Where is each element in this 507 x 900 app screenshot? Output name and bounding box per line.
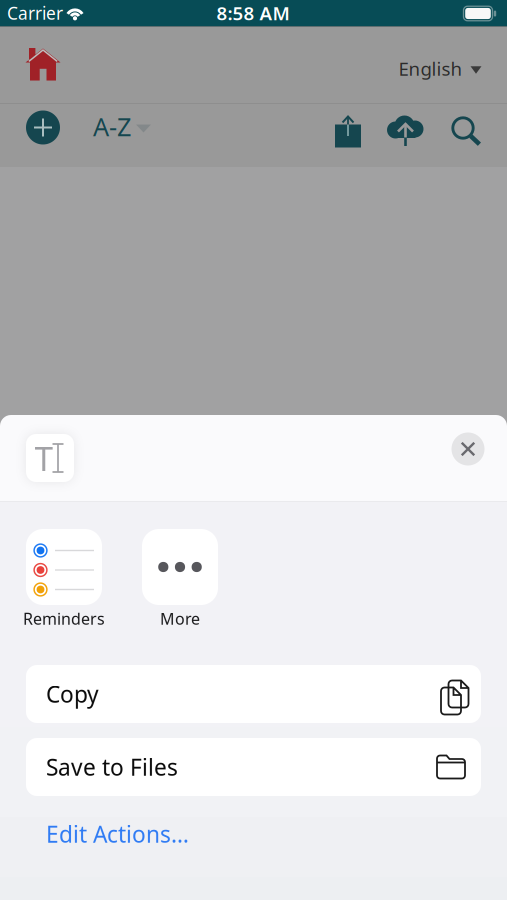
staticText: T bbox=[34, 436, 53, 480]
button[interactable]: Reminders bbox=[23, 608, 105, 629]
staticText: More bbox=[160, 608, 200, 629]
button[interactable] bbox=[26, 529, 102, 605]
staticText: English bbox=[398, 56, 462, 81]
button[interactable] bbox=[445, 109, 480, 144]
staticText: Carrier bbox=[7, 1, 63, 24]
button[interactable] bbox=[142, 529, 218, 605]
staticText: Reminders bbox=[23, 608, 105, 629]
staticText: Copy bbox=[46, 679, 99, 709]
button[interactable]: Save to Files bbox=[26, 738, 481, 796]
staticText: 8:58 AM bbox=[216, 1, 289, 25]
button[interactable]: Edit Actions… bbox=[46, 819, 189, 849]
button[interactable] bbox=[451, 432, 484, 465]
button[interactable]: Copy bbox=[26, 665, 481, 723]
button[interactable]: More bbox=[160, 608, 200, 629]
button[interactable]: A-Z bbox=[93, 110, 151, 143]
button[interactable] bbox=[25, 47, 60, 80]
button[interactable] bbox=[26, 110, 60, 144]
button[interactable] bbox=[333, 109, 361, 143]
staticText: A-Z bbox=[93, 110, 131, 143]
button[interactable] bbox=[386, 111, 424, 142]
button[interactable]: English bbox=[398, 56, 481, 81]
staticText: Edit Actions… bbox=[46, 819, 189, 849]
staticText: Save to Files bbox=[46, 752, 178, 782]
